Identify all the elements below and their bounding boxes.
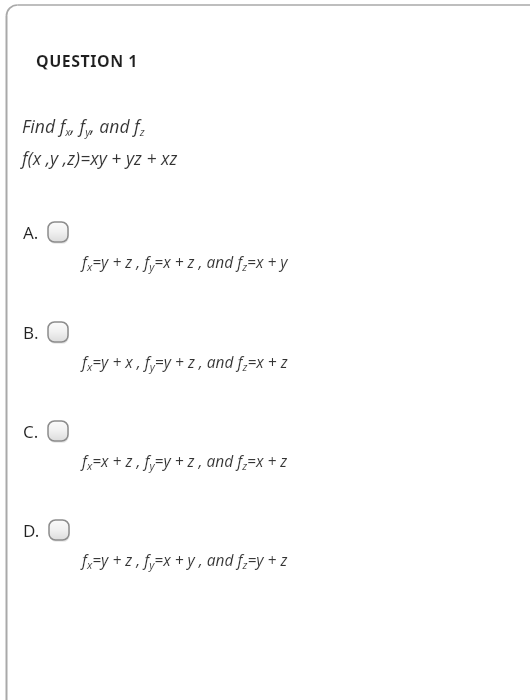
other: Select answer B. (46, 320, 70, 344)
other: Select answer D. (47, 518, 71, 542)
staticText: fx=y + z , fy=x + y , and fz=y + z (82, 549, 288, 572)
staticText: f(x ,y ,z)=xy + yz + xz (22, 146, 178, 170)
staticText: C. (23, 420, 39, 443)
other: Select answer C. (46, 419, 70, 443)
staticText: Find fx, fy, and fz (22, 114, 145, 139)
staticText: fx=y + z , fy=x + z , and fz=x + y (82, 251, 288, 274)
staticText: fx=x + z , fy=y + z , and fz=x + z (82, 450, 288, 473)
staticText: D. (23, 519, 40, 542)
staticText: B. (23, 321, 39, 344)
button[interactable]: D. (7, 518, 530, 572)
staticText: fx=y + x , fy=y + z , and fz=x + z (82, 351, 288, 374)
staticText: QUESTION 1 (36, 50, 138, 72)
staticText: A. (23, 221, 39, 244)
button[interactable]: B. (7, 320, 530, 374)
other: Select answer A. (46, 220, 70, 244)
button[interactable]: A. (7, 220, 530, 274)
button[interactable]: C. (7, 419, 530, 473)
